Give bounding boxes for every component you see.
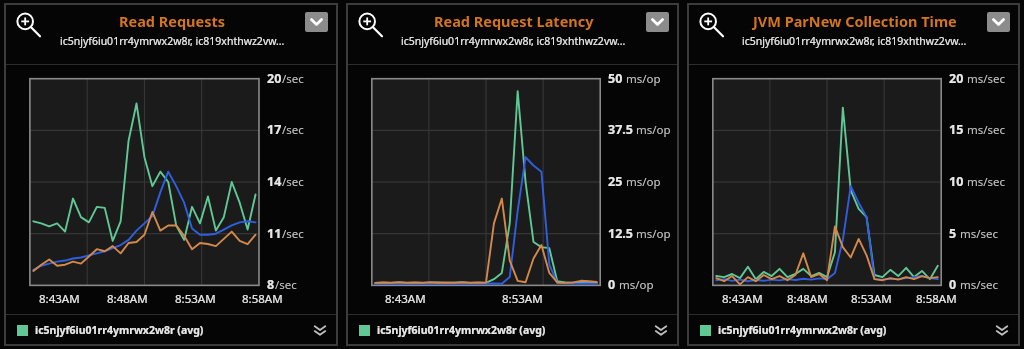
staticText: ic5njyf6iu01rr4ymrwx2w8r (avg) — [35, 323, 309, 337]
staticText: ms/op — [633, 226, 671, 242]
button[interactable]: Zoom in — [14, 11, 40, 37]
staticText: 8:53AM — [851, 291, 892, 307]
button[interactable]: Panel menu — [646, 12, 669, 32]
staticText: 8 — [267, 276, 275, 293]
button[interactable]: Expand legend — [991, 319, 1013, 341]
button[interactable]: Panel menu — [987, 12, 1010, 32]
staticText: 14 — [267, 173, 282, 190]
staticText: /sec — [282, 226, 304, 242]
staticText: 50 — [608, 70, 623, 87]
staticText: ms/sec — [957, 226, 999, 242]
button[interactable]: Expand legend — [650, 319, 672, 341]
button[interactable]: Panel menu — [305, 12, 328, 32]
staticText: 17 — [267, 121, 282, 138]
staticText: 8:43AM — [39, 291, 80, 307]
staticText: ic5njyf6iu01rr4ymrwx2w8r (avg) — [718, 323, 991, 337]
staticText: /sec — [282, 174, 304, 190]
staticText: Read Requests — [119, 11, 226, 31]
staticText: 20 — [267, 70, 282, 87]
staticText: ms/sec — [957, 277, 999, 293]
staticText: 8:43AM — [385, 291, 426, 307]
staticText: 8:48AM — [107, 291, 148, 307]
staticText: ic5njyf6iu01rr4ymrwx2w8r, ic819xhthwz2vw… — [742, 34, 967, 48]
button[interactable]: ic5njyf6iu01rr4ymrwx2w8r (avg) — [688, 315, 1019, 345]
staticText: Read Request Latency — [434, 11, 594, 31]
staticText: /sec — [282, 71, 304, 87]
staticText: 20 — [949, 70, 964, 87]
staticText: ms/op — [616, 277, 654, 293]
staticText: 8:53AM — [502, 291, 543, 307]
staticText: ms/sec — [964, 71, 1006, 87]
staticText: ic5njyf6iu01rr4ymrwx2w8r (avg) — [377, 323, 650, 337]
staticText: 15 — [949, 121, 964, 138]
staticText: 25 — [608, 173, 623, 190]
staticText: 0 — [608, 276, 616, 293]
staticText: 0 — [949, 276, 957, 293]
staticText: JVM ParNew Collection Time — [753, 11, 957, 31]
staticText: ms/op — [633, 122, 671, 138]
button[interactable]: ic5njyf6iu01rr4ymrwx2w8r (avg) — [347, 315, 678, 345]
staticText: 37.5 — [608, 121, 633, 138]
staticText: ms/sec — [964, 174, 1006, 190]
staticText: 10 — [949, 173, 964, 190]
staticText: 8:43AM — [722, 291, 763, 307]
button[interactable]: ic5njyf6iu01rr4ymrwx2w8r (avg) — [5, 315, 337, 345]
staticText: ms/sec — [964, 122, 1006, 138]
button[interactable]: Expand legend — [309, 319, 331, 341]
staticText: 8:58AM — [242, 291, 283, 307]
staticText: 11 — [267, 225, 282, 242]
staticText: /sec — [282, 122, 304, 138]
staticText: ic5njyf6iu01rr4ymrwx2w8r, ic819xhthwz2vw… — [60, 34, 285, 48]
staticText: ms/op — [623, 71, 661, 87]
staticText: 8:53AM — [175, 291, 216, 307]
staticText: /sec — [275, 277, 297, 293]
staticText: 5 — [949, 225, 957, 242]
staticText: ic5njyf6iu01rr4ymrwx2w8r, ic819xhthwz2vw… — [401, 34, 626, 48]
staticText: 8:58AM — [916, 291, 957, 307]
staticText: ms/op — [623, 174, 661, 190]
staticText: 8:48AM — [787, 291, 828, 307]
staticText: 12.5 — [608, 225, 633, 242]
button[interactable]: Zoom in — [356, 11, 382, 37]
button[interactable]: Zoom in — [697, 11, 723, 37]
